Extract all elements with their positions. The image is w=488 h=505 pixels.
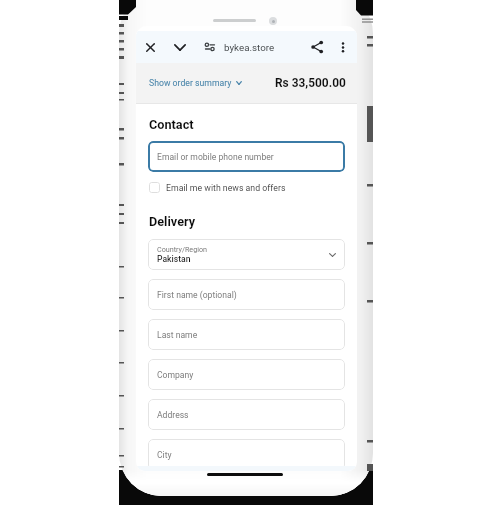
staticText: bykea.store (224, 42, 275, 53)
button[interactable]: Collapse (169, 36, 191, 58)
button[interactable]: Close (139, 36, 161, 58)
staticText: Show order summary (149, 78, 232, 88)
button[interactable]: Share (306, 36, 328, 58)
button[interactable]: Company (148, 359, 345, 390)
staticText: Company (157, 370, 194, 380)
staticText: Pakistan (157, 254, 191, 264)
staticText: Address (157, 410, 189, 420)
staticText: Email or mobile phone number (157, 152, 274, 162)
staticText: Delivery (149, 214, 196, 229)
button[interactable]: City (148, 439, 345, 470)
button[interactable]: Address (148, 399, 345, 430)
button[interactable]: Email or mobile phone number (148, 141, 345, 172)
button[interactable]: Site settings (199, 36, 221, 58)
staticText: City (157, 450, 172, 460)
button[interactable]: Last name (148, 319, 345, 350)
staticText: First name (optional) (157, 290, 237, 300)
staticText: Country/Region (157, 245, 208, 253)
staticText: Last name (157, 330, 198, 340)
staticText: Contact (149, 117, 194, 132)
button[interactable]: Country/Region (148, 239, 345, 270)
staticText: Email me with news and offers (166, 183, 286, 193)
button[interactable]: First name (optional) (148, 279, 345, 310)
button[interactable]: Show order summary (149, 74, 242, 92)
button[interactable]: More options (332, 36, 354, 58)
button[interactable]: Email me with news and offers (149, 180, 286, 195)
staticText: Rs 33,500.00 (275, 76, 346, 90)
